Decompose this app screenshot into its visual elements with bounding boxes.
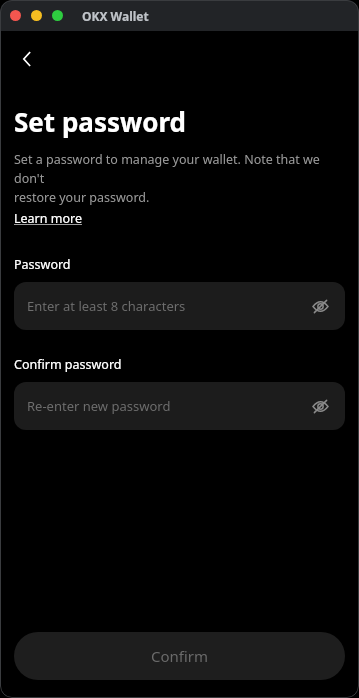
button[interactable]: Window control	[10, 10, 21, 21]
staticText: OKX Wallet	[82, 8, 149, 24]
button[interactable]: Back	[10, 42, 44, 76]
staticText: Re-enter new password	[27, 397, 171, 415]
button[interactable]: Re-enter new password	[14, 382, 345, 430]
button[interactable]: Confirm	[14, 632, 345, 680]
staticText: Set a password to manage your wallet. No…	[14, 151, 345, 206]
button[interactable]: Show password	[307, 293, 333, 319]
button[interactable]: Window control	[52, 10, 63, 21]
button[interactable]: Window control	[31, 10, 42, 21]
staticText: Password	[14, 256, 71, 273]
button[interactable]: Learn more	[14, 210, 82, 227]
staticText: Confirm	[151, 646, 209, 666]
staticText: Set password	[14, 104, 187, 139]
staticText: Confirm password	[14, 356, 122, 373]
button[interactable]: Enter at least 8 characters	[14, 282, 345, 330]
staticText: Enter at least 8 characters	[27, 297, 186, 315]
button[interactable]: Show password	[307, 393, 333, 419]
staticText: Learn more	[14, 210, 82, 227]
